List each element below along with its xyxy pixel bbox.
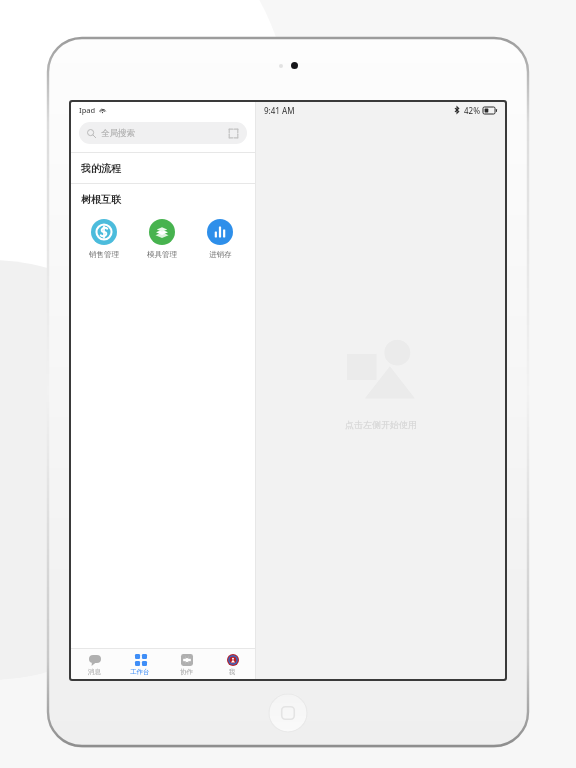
staticText: 我的流程 [81, 162, 121, 175]
button[interactable]: 模具管理 [139, 216, 185, 261]
staticText: 协作 [180, 668, 193, 676]
staticText: 9:41 AM [264, 105, 295, 116]
staticText: 42% [464, 105, 480, 116]
staticText: 树根互联 [81, 193, 121, 206]
staticText: 全局搜索 [101, 128, 135, 139]
button[interactable]: 我 [209, 649, 255, 679]
button[interactable]: 树根互联 [71, 184, 255, 214]
staticText: 消息 [88, 668, 101, 676]
button[interactable]: 工作台 [117, 649, 163, 679]
button[interactable]: 协作 [163, 649, 209, 679]
staticText: 工作台 [130, 668, 150, 676]
staticText: 点击左侧开始使用 [345, 419, 417, 430]
button[interactable]: 消息 [71, 649, 117, 679]
staticText: 销售管理 [89, 250, 119, 259]
staticText: 进销存 [209, 250, 232, 259]
button[interactable]: 全局搜索 [79, 122, 247, 144]
button[interactable]: Home [269, 694, 307, 732]
button[interactable]: 销售管理 [81, 216, 127, 261]
staticText: 模具管理 [147, 250, 177, 259]
button[interactable]: 进销存 [197, 216, 243, 261]
staticText: 我 [229, 668, 236, 676]
staticText: Ipad [79, 105, 96, 115]
button[interactable]: 我的流程 [71, 153, 255, 183]
